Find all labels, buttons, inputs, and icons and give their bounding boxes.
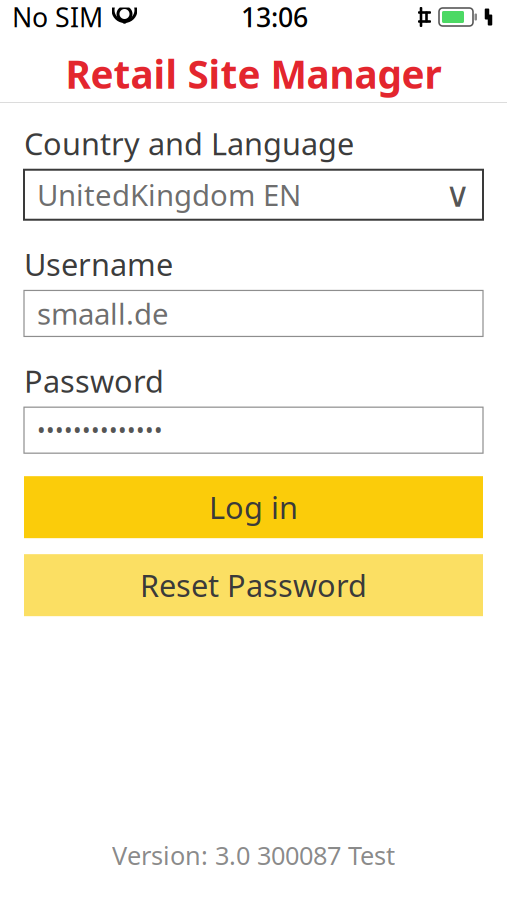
button[interactable]: Log in — [24, 476, 483, 538]
staticText: Retail Site Manager — [65, 48, 441, 99]
button[interactable]: UnitedKingdom EN — [24, 170, 483, 220]
staticText: UnitedKingdom EN — [37, 175, 301, 214]
staticText: Log in — [209, 487, 298, 527]
staticText: No SIM — [12, 0, 103, 35]
staticText: smaall.de — [37, 294, 169, 333]
staticText: 13:06 — [241, 0, 308, 35]
staticText: ∨ — [445, 175, 470, 214]
staticText: Reset Password — [140, 565, 367, 605]
staticText: •••••••••••••• — [37, 415, 163, 445]
button[interactable]: smaall.de — [24, 290, 483, 336]
button[interactable]: •••••••••••••• — [24, 407, 483, 453]
button[interactable]: Reset Password — [24, 554, 483, 616]
staticText: Country and Language — [24, 123, 354, 164]
staticText: Username — [24, 244, 173, 284]
staticText: Version: 3.0 300087 Test — [112, 838, 395, 872]
staticText: Password — [24, 360, 164, 401]
